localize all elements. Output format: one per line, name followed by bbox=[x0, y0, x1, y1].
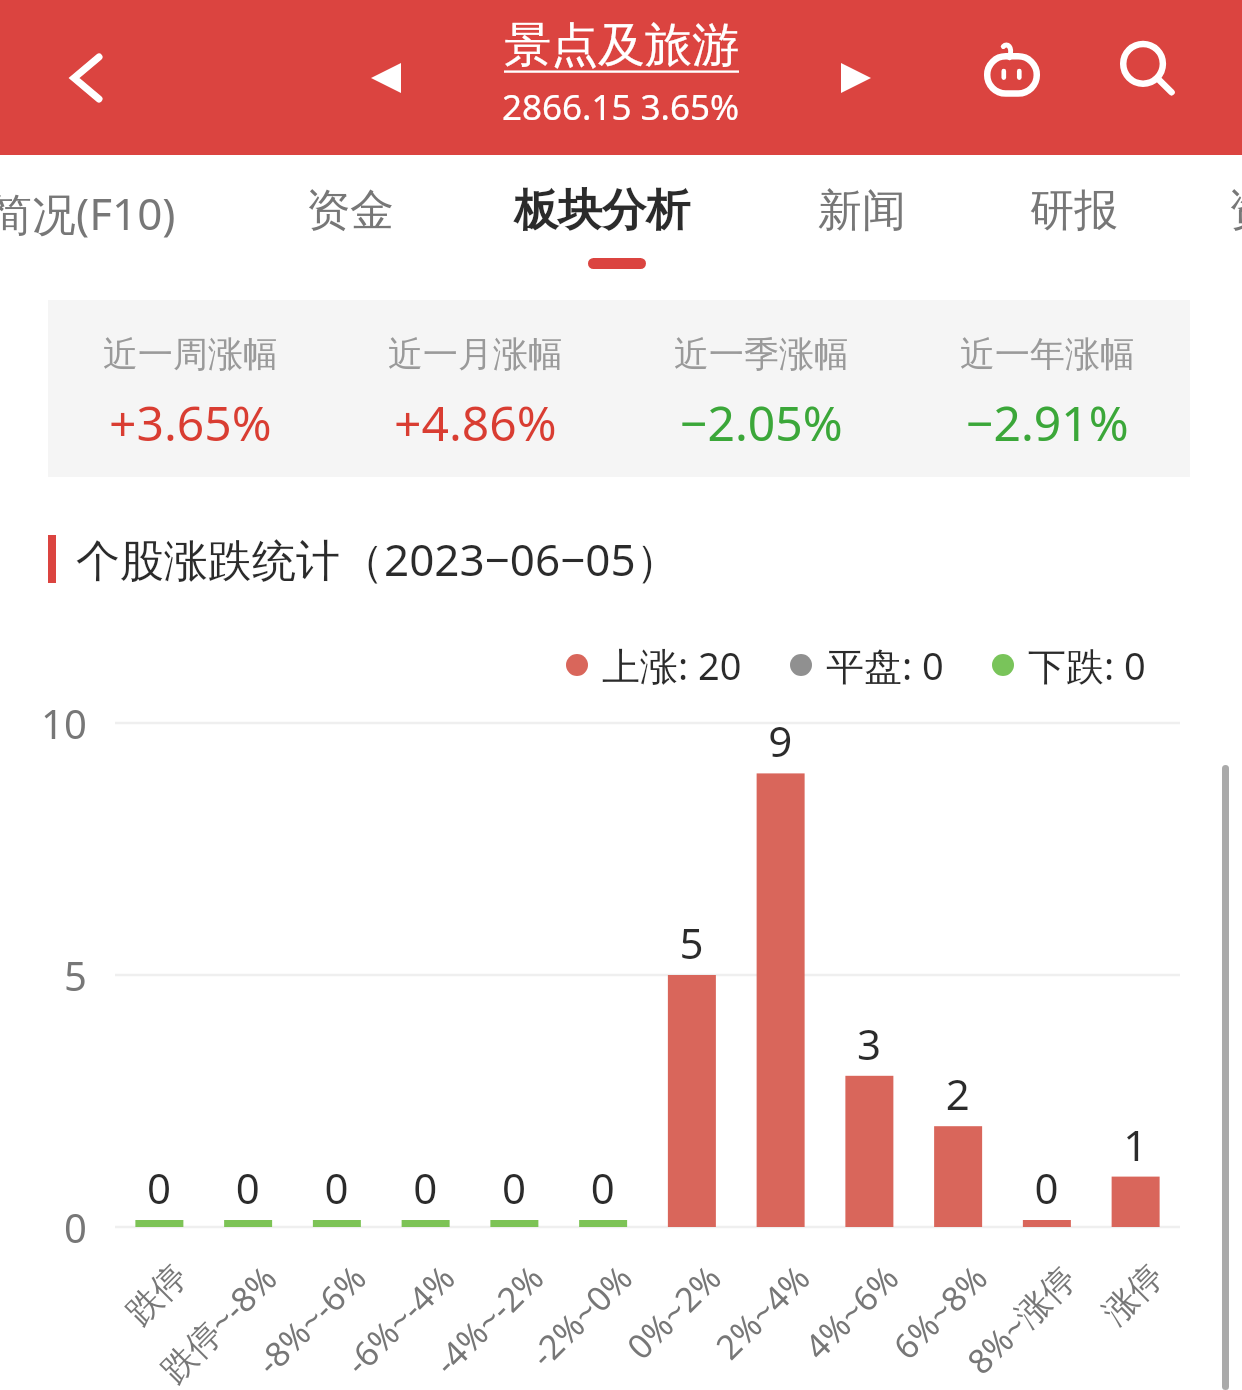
staticText: 上涨: 20 bbox=[602, 639, 742, 691]
staticText: 近一季涨幅 bbox=[674, 332, 849, 376]
button[interactable]: 资 bbox=[1222, 155, 1242, 290]
staticText: −2.05% bbox=[680, 390, 843, 455]
button[interactable]: Next sector bbox=[820, 42, 892, 114]
staticText: 板块分析 bbox=[514, 183, 690, 238]
staticText: 近一月涨幅 bbox=[388, 332, 563, 376]
staticText: 2866.15 3.65% bbox=[502, 83, 740, 131]
staticText: +3.65% bbox=[109, 390, 272, 455]
button[interactable]: 近一年涨幅 bbox=[904, 300, 1190, 455]
button[interactable]: Search bbox=[1098, 20, 1198, 120]
button[interactable]: 上涨: 20 bbox=[566, 639, 742, 691]
staticText: 下跌: 0 bbox=[1028, 639, 1146, 691]
button[interactable]: 新闻 bbox=[812, 155, 912, 290]
staticText: 个股涨跌统计（2023−06−05） bbox=[76, 529, 680, 589]
button[interactable]: AI assistant bbox=[962, 20, 1062, 120]
staticText: 新闻 bbox=[818, 183, 906, 238]
staticText: 资金 bbox=[306, 183, 394, 238]
staticText: 近一年涨幅 bbox=[960, 332, 1135, 376]
button[interactable]: 资金 bbox=[300, 155, 400, 290]
button[interactable]: 平盘: 0 bbox=[790, 639, 944, 691]
staticText: −2.91% bbox=[966, 390, 1129, 455]
button[interactable]: 简况(F10) bbox=[0, 155, 182, 290]
button[interactable]: 板块分析 bbox=[508, 155, 696, 290]
button[interactable]: 近一月涨幅 bbox=[333, 300, 618, 455]
button[interactable]: 近一周涨幅 bbox=[48, 300, 333, 455]
button[interactable]: 下跌: 0 bbox=[992, 639, 1146, 691]
button[interactable]: 景点及旅游 bbox=[502, 16, 740, 131]
staticText: 简况(F10) bbox=[0, 183, 176, 243]
staticText: 景点及旅游 bbox=[504, 16, 739, 75]
staticText: +4.86% bbox=[394, 390, 557, 455]
button[interactable]: 近一季涨幅 bbox=[618, 300, 904, 455]
staticText: 近一周涨幅 bbox=[103, 332, 278, 376]
button[interactable]: 研报 bbox=[1024, 155, 1124, 290]
button[interactable]: Back bbox=[48, 38, 128, 118]
staticText: 研报 bbox=[1030, 183, 1118, 238]
button[interactable]: Previous sector bbox=[350, 42, 422, 114]
staticText: 资 bbox=[1228, 183, 1242, 238]
staticText: 平盘: 0 bbox=[826, 639, 944, 691]
